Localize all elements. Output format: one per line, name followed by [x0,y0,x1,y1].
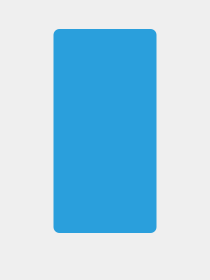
button[interactable]: Card [53,29,156,233]
